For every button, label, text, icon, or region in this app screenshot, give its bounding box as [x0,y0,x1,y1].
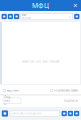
button[interactable]: Voice [74,111,79,116]
button[interactable]: Подпись [3,98,21,104]
staticText: ✕ [73,2,78,9]
button[interactable]: Back [2,14,7,19]
staticText: подписи [64,99,78,102]
staticText: Подпись [4,96,11,106]
button[interactable]: Forward [8,14,13,19]
staticText: ⌄ [69,15,72,18]
button[interactable]: Close [70,0,81,11]
staticText: Уведомить [7,89,19,92]
button[interactable]: Emoji [68,111,73,116]
staticText: Введите здесь текст своего сообщения [22,60,59,63]
button[interactable]: Attach [62,111,67,116]
button[interactable]: Уведомить [3,89,19,92]
staticText: Написать сообщение [11,112,42,115]
staticText: mail [22,13,27,16]
button[interactable]: Menu [74,14,79,19]
button[interactable]: Reload [14,14,19,19]
button[interactable]: Send [2,110,8,117]
staticText: МФЦ [32,1,49,10]
button[interactable]: Не использовать подпись [50,89,78,92]
staticText: address [22,16,31,20]
staticText: Не использовать подпись [54,89,78,92]
